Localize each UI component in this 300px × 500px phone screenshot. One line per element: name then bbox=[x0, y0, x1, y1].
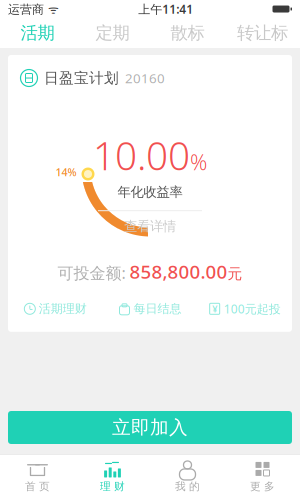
staticText: 转让标 bbox=[237, 22, 288, 44]
button[interactable]: 定期 bbox=[75, 18, 150, 48]
staticText: 858,800.00 bbox=[129, 259, 227, 284]
staticText: 10.00 bbox=[93, 129, 190, 181]
staticText: 更 多 bbox=[250, 480, 275, 493]
button[interactable]: 我 的 bbox=[150, 455, 225, 499]
staticText: 元 bbox=[227, 265, 242, 283]
staticText: 100元起投 bbox=[224, 301, 281, 317]
staticText: 上午11:41 bbox=[138, 1, 193, 17]
button[interactable]: 理 财 bbox=[75, 455, 150, 499]
staticText: 首 页 bbox=[25, 480, 50, 493]
staticText: % bbox=[190, 148, 207, 176]
button[interactable]: 首 页 bbox=[0, 455, 75, 499]
button[interactable]: 查看详情 bbox=[124, 211, 176, 235]
staticText: 年化收益率 bbox=[117, 184, 182, 200]
staticText: 20160 bbox=[125, 69, 165, 87]
staticText: 活期 bbox=[20, 22, 54, 44]
staticText: 查看详情 bbox=[124, 218, 176, 235]
staticText: 立即加入 bbox=[112, 416, 188, 439]
button[interactable]: 活期 bbox=[0, 18, 75, 48]
staticText: 散标 bbox=[170, 22, 204, 44]
button[interactable]: 散标 bbox=[150, 18, 225, 48]
button[interactable]: 立即加入 bbox=[8, 411, 292, 444]
staticText: 我 的 bbox=[175, 480, 200, 493]
staticText: 理 财 bbox=[100, 480, 125, 493]
button[interactable]: 更 多 bbox=[225, 455, 300, 499]
staticText: 定期 bbox=[95, 22, 129, 44]
staticText: 可投金额: bbox=[57, 262, 129, 283]
staticText: 每日结息 bbox=[133, 301, 181, 316]
staticText: 日盈宝计划 bbox=[44, 69, 119, 87]
staticText: ¥ bbox=[212, 303, 217, 315]
staticText: 活期理财 bbox=[39, 301, 87, 316]
staticText: 运营商 ᯤ bbox=[8, 1, 59, 17]
staticText: 14% bbox=[55, 165, 76, 179]
button[interactable]: 转让标 bbox=[225, 18, 300, 48]
